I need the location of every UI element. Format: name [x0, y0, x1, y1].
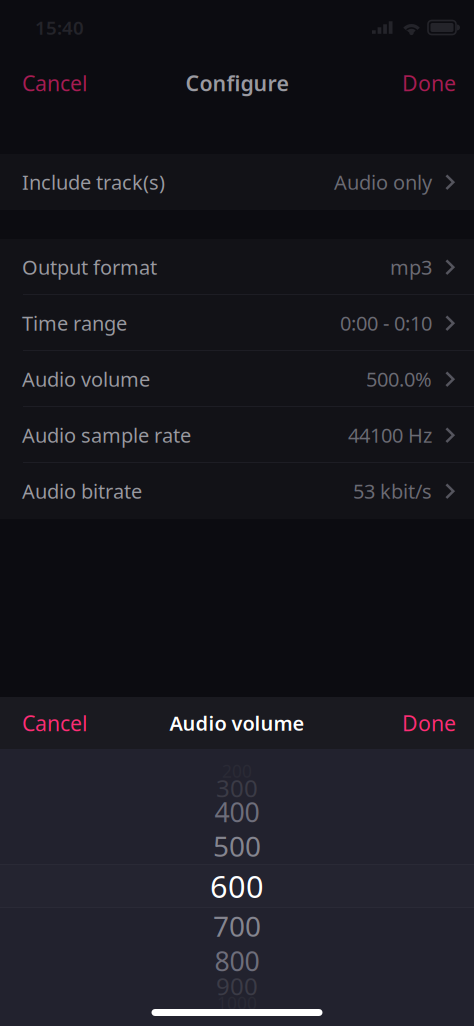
staticText: Include track(s) [22, 169, 165, 195]
button[interactable]: Include track(s) [0, 154, 474, 210]
staticText: Time range [22, 310, 127, 336]
staticText: 44100 Hz [348, 422, 432, 448]
staticText: 1000 [217, 991, 257, 1014]
button[interactable]: Cancel [22, 60, 98, 106]
staticText: Cancel [22, 69, 88, 97]
staticText: 400 [214, 794, 259, 830]
staticText: Audio only [334, 169, 432, 195]
staticText: Configure [185, 69, 288, 97]
staticText: 600 [210, 866, 264, 906]
button[interactable]: Time range [0, 295, 474, 351]
staticText: Done [402, 709, 456, 737]
staticText: 900 [216, 970, 258, 1002]
staticText: mp3 [390, 254, 432, 280]
staticText: 53 kbit/s [353, 478, 432, 504]
button[interactable]: Done [392, 700, 456, 746]
button[interactable]: Audio bitrate [0, 463, 474, 519]
staticText: Audio sample rate [22, 422, 191, 448]
staticText: Audio volume [169, 710, 304, 736]
staticText: Output format [22, 254, 157, 280]
staticText: 0:00 - 0:10 [340, 310, 432, 336]
staticText: 15:40 [35, 15, 84, 40]
staticText: 500.0% [366, 366, 432, 392]
staticText: Audio volume [22, 366, 150, 392]
button[interactable]: Cancel [22, 700, 98, 746]
staticText: 800 [214, 943, 259, 979]
staticText: 300 [216, 772, 258, 804]
button[interactable]: Audio volume [0, 351, 474, 407]
staticText: 500 [213, 827, 261, 865]
button[interactable]: Output format [0, 239, 474, 295]
staticText: 200 [222, 759, 252, 782]
staticText: 700 [213, 907, 261, 945]
button[interactable]: Done [392, 60, 456, 106]
staticText: Done [402, 69, 456, 97]
button[interactable]: Audio sample rate [0, 407, 474, 463]
staticText: Cancel [22, 709, 88, 737]
staticText: Audio bitrate [22, 478, 142, 504]
